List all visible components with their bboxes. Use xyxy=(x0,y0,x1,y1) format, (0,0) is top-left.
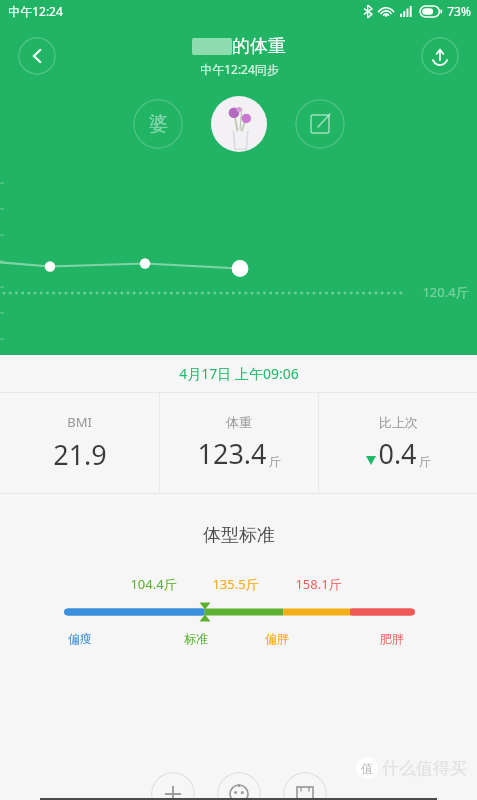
staticText: 21.9 xyxy=(53,436,107,473)
button[interactable]: BMI xyxy=(0,393,159,493)
staticText: BMI xyxy=(67,413,92,431)
staticText: 中午12:24同步 xyxy=(200,61,279,77)
staticText: 73% xyxy=(447,3,471,19)
button[interactable]: Baby xyxy=(217,772,261,800)
staticText: 体重 xyxy=(226,414,252,430)
button[interactable]: Scale xyxy=(283,772,327,800)
staticText: 135.5斤 xyxy=(212,575,259,593)
staticText: 偏胖 xyxy=(265,631,289,646)
button[interactable]: 体重 xyxy=(160,393,318,493)
staticText: 4月17日 上午09:06 xyxy=(179,364,299,383)
staticText: 斤 xyxy=(269,454,281,469)
button[interactable]: Add xyxy=(151,772,195,800)
staticText: 120.4斤 xyxy=(422,283,469,301)
staticText: 的体重 xyxy=(232,35,286,58)
staticText: 体型标准 xyxy=(203,524,275,547)
button[interactable]: Back xyxy=(18,37,56,75)
staticText: 123.4 xyxy=(197,435,267,472)
button[interactable]: Edit xyxy=(295,99,345,149)
staticText: 0.4 xyxy=(378,435,417,472)
staticText: 标准 xyxy=(184,631,208,646)
staticText: 斤 xyxy=(419,454,431,469)
staticText: 婆 xyxy=(149,112,168,136)
button[interactable]: 4月17日 上午09:06 xyxy=(0,355,477,392)
button[interactable]: Profile photo xyxy=(211,96,267,152)
staticText: 104.4斤 xyxy=(130,575,177,593)
button[interactable]: 婆 xyxy=(133,99,183,149)
button[interactable]: 比上次 xyxy=(319,393,477,493)
staticText: 肥胖 xyxy=(380,631,404,646)
staticText: 值 xyxy=(361,761,373,776)
staticText: 什么值得买 xyxy=(382,758,467,779)
staticText: 158.1斤 xyxy=(295,575,342,593)
staticText: 比上次 xyxy=(379,414,418,430)
staticText: 中午12:24 xyxy=(8,3,63,19)
staticText: 偏瘦 xyxy=(68,631,92,646)
button[interactable]: Share xyxy=(421,37,459,75)
